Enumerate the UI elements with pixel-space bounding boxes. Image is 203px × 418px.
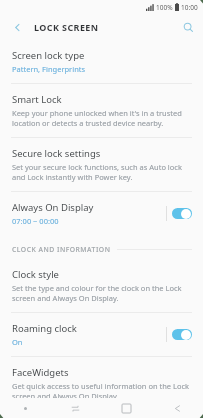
button[interactable]: Contact information [0, 411, 203, 418]
staticText: FaceWidgets [12, 366, 69, 379]
button[interactable]: Toggle Roaming clock [167, 325, 197, 344]
staticText: Screen lock type [12, 49, 85, 62]
button[interactable]: Smart Lock [0, 84, 203, 137]
button[interactable]: FaceWidgets [0, 357, 203, 410]
staticText: On [12, 337, 23, 347]
staticText: Roaming clock [12, 322, 77, 335]
button[interactable]: Roaming clock [0, 313, 203, 356]
button[interactable]: Search [173, 14, 203, 40]
staticText: Get quick access to useful information o… [12, 381, 197, 401]
button[interactable]: Secure lock settings [0, 138, 203, 191]
button[interactable]: Home [101, 398, 152, 418]
staticText: LOCK SCREEN [34, 21, 99, 33]
staticText: Pattern, Fingerprints [12, 64, 86, 74]
staticText: CLOCK AND INFORMATION [12, 245, 111, 254]
button[interactable]: Toggle Always On Display [167, 204, 197, 223]
staticText: Keep your phone unlocked when it's in a … [12, 108, 197, 128]
button[interactable]: Recents [50, 398, 101, 418]
staticText: Always On Display [12, 201, 94, 214]
staticText: 10:00 [181, 3, 198, 12]
button[interactable]: Clock style [0, 259, 203, 312]
staticText: Set your secure lock functions, such as … [12, 162, 197, 182]
button[interactable]: Screen lock type [0, 40, 203, 83]
button[interactable]: Back [152, 398, 203, 418]
button[interactable]: Back [0, 14, 34, 40]
staticText: Set the type and colour for the clock on… [12, 283, 197, 303]
staticText: 07:00 ~ 00:00 [12, 216, 59, 226]
staticText: 100% [156, 3, 173, 12]
button[interactable]: Always On Display [0, 192, 203, 235]
staticText: Smart Lock [12, 93, 62, 106]
staticText: Clock style [12, 268, 59, 281]
staticText: Secure lock settings [12, 147, 101, 160]
button[interactable]: Menu [0, 398, 50, 418]
